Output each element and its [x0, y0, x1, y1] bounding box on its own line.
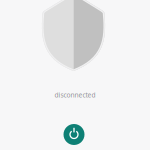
- button[interactable]: Connect: [63, 124, 84, 145]
- staticText: disconnected: [54, 91, 95, 99]
